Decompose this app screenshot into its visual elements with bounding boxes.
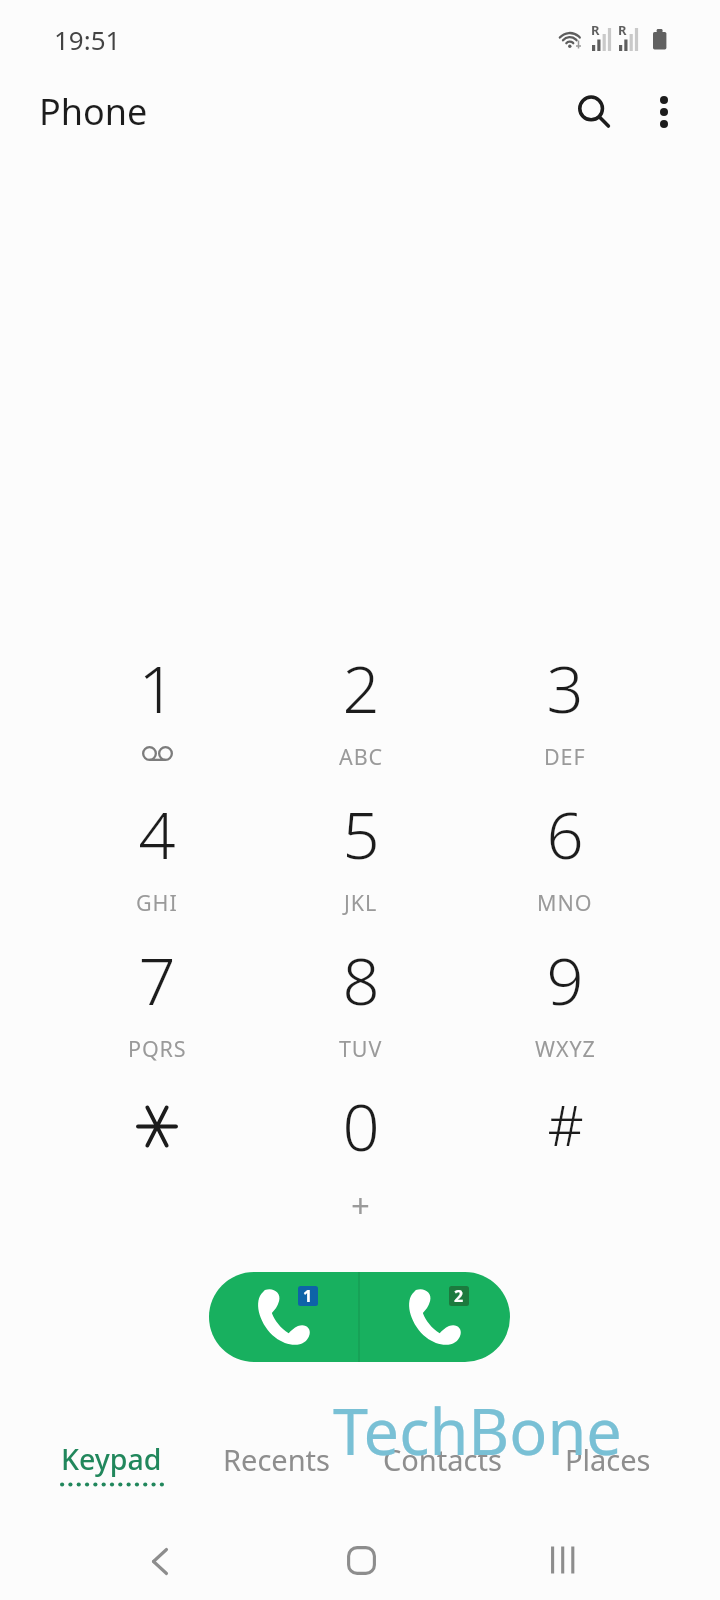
staticText: JKL	[344, 888, 378, 917]
staticText: +	[351, 1183, 371, 1228]
staticText: GHI	[136, 888, 178, 917]
staticText: WXYZ	[535, 1034, 596, 1063]
staticText: 3	[546, 644, 584, 733]
button[interactable]: Recents	[194, 1440, 359, 1504]
staticText: TechBone	[333, 1388, 622, 1474]
button[interactable]: 2	[259, 637, 463, 783]
staticText: DEF	[544, 742, 586, 771]
staticText: 1	[138, 644, 176, 733]
staticText: 7	[138, 936, 176, 1025]
staticText: PQRS	[128, 1034, 187, 1063]
button[interactable]: 5	[259, 783, 463, 929]
button[interactable]: 9	[463, 929, 667, 1075]
staticText: #	[547, 1086, 584, 1162]
button[interactable]: Back	[120, 1521, 200, 1600]
staticText: 5	[342, 790, 380, 879]
staticText: 0	[342, 1082, 380, 1171]
staticText: 19:51	[54, 22, 121, 57]
staticText: Contacts	[383, 1440, 502, 1479]
button[interactable]: Search	[558, 76, 630, 148]
staticText: Phone	[39, 87, 148, 136]
staticText: TUV	[339, 1034, 383, 1063]
staticText: 8	[342, 936, 380, 1025]
staticText: Places	[565, 1440, 651, 1479]
button[interactable]: Call with SIM 1	[209, 1272, 358, 1362]
button[interactable]: Contacts	[359, 1440, 525, 1504]
button[interactable]: More options	[628, 76, 700, 148]
staticText: 9	[546, 936, 584, 1025]
button[interactable]: 6	[463, 783, 667, 929]
staticText: ABC	[339, 742, 384, 771]
button[interactable]: Star	[55, 1075, 259, 1221]
button[interactable]: Home	[321, 1520, 401, 1600]
staticText: 1	[303, 1286, 313, 1305]
staticText: Recents	[223, 1440, 330, 1479]
button[interactable]: 0	[259, 1075, 463, 1221]
button[interactable]: #	[463, 1075, 667, 1221]
staticText: Keypad	[61, 1440, 162, 1479]
staticText: R	[591, 21, 600, 39]
button[interactable]: Keypad	[29, 1440, 194, 1504]
staticText: MNO	[537, 888, 593, 917]
button[interactable]: 8	[259, 929, 463, 1075]
button[interactable]: Call with SIM 2	[360, 1272, 510, 1362]
button[interactable]: 4	[55, 783, 259, 929]
staticText: R	[618, 21, 627, 39]
staticText: 4	[138, 790, 176, 879]
staticText: 6	[546, 790, 584, 879]
staticText: 2	[342, 644, 380, 733]
button[interactable]: 7	[55, 929, 259, 1075]
staticText: 2	[454, 1286, 464, 1305]
button[interactable]: Recent apps	[523, 1520, 603, 1600]
button[interactable]: Places	[525, 1440, 691, 1504]
button[interactable]: 1	[55, 637, 259, 783]
button[interactable]: 3	[463, 637, 667, 783]
